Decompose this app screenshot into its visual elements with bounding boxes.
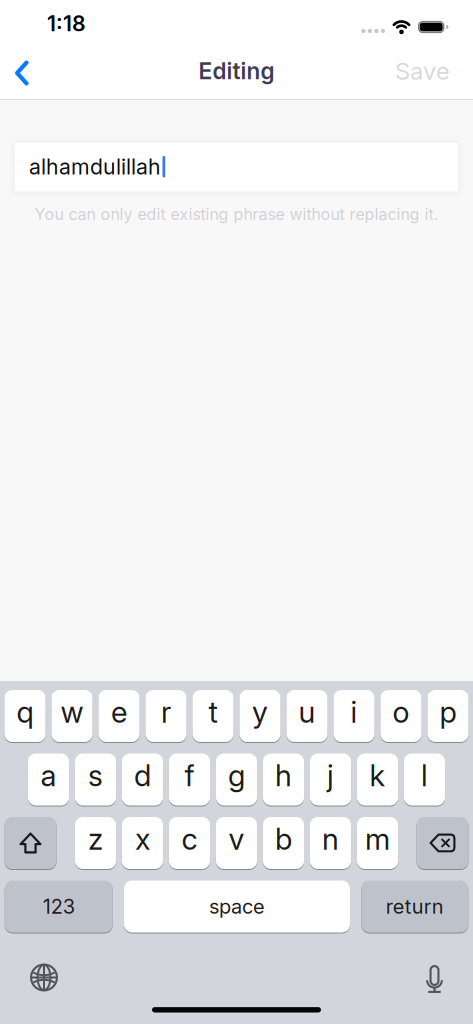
button[interactable]: v bbox=[216, 817, 257, 869]
button[interactable]: Back bbox=[0, 47, 29, 98]
staticText: d bbox=[134, 758, 151, 793]
staticText: n bbox=[322, 821, 339, 857]
staticText: z bbox=[88, 821, 103, 857]
button[interactable]: o bbox=[380, 690, 422, 742]
staticText: o bbox=[392, 694, 409, 730]
button[interactable]: z bbox=[75, 817, 116, 869]
button[interactable]: 123 bbox=[5, 880, 113, 932]
staticText: 123 bbox=[43, 894, 75, 919]
button[interactable]: q bbox=[4, 690, 46, 742]
staticText: q bbox=[16, 694, 33, 730]
button[interactable]: e bbox=[98, 690, 140, 742]
button[interactable]: Dictation bbox=[426, 963, 473, 991]
staticText: Save bbox=[395, 56, 450, 85]
button[interactable]: s bbox=[75, 753, 116, 805]
button[interactable]: n bbox=[310, 817, 351, 869]
button[interactable]: j bbox=[310, 753, 351, 805]
staticText: r bbox=[161, 694, 171, 730]
button[interactable]: w bbox=[51, 690, 93, 742]
button[interactable]: y bbox=[239, 690, 281, 742]
button[interactable]: c bbox=[169, 817, 210, 869]
staticText: w bbox=[60, 694, 83, 730]
staticText: Editing bbox=[198, 57, 274, 85]
staticText: 1:18 bbox=[47, 11, 86, 36]
button[interactable]: return bbox=[361, 880, 468, 932]
staticText: x bbox=[135, 821, 150, 857]
staticText: j bbox=[327, 758, 334, 793]
button[interactable]: p bbox=[427, 690, 469, 742]
staticText: space bbox=[209, 894, 265, 919]
button[interactable]: Phrase text field bbox=[13, 141, 459, 192]
button[interactable]: f bbox=[169, 753, 210, 805]
staticText: v bbox=[228, 821, 244, 857]
button[interactable]: Next keyboard bbox=[0, 963, 58, 991]
button[interactable]: t bbox=[192, 690, 234, 742]
button[interactable]: Save bbox=[395, 58, 473, 87]
button[interactable]: u bbox=[286, 690, 328, 742]
button[interactable]: g bbox=[216, 753, 257, 805]
staticText: e bbox=[111, 694, 127, 730]
button[interactable]: a bbox=[28, 753, 69, 805]
button[interactable]: Delete bbox=[416, 817, 468, 869]
staticText: You can only edit existing phrase withou… bbox=[34, 204, 438, 224]
button[interactable]: x bbox=[122, 817, 163, 869]
staticText: g bbox=[228, 758, 245, 793]
staticText: c bbox=[181, 821, 197, 857]
staticText: y bbox=[252, 694, 268, 730]
staticText: u bbox=[298, 694, 315, 730]
staticText: k bbox=[369, 758, 385, 793]
staticText: i bbox=[350, 694, 357, 730]
staticText: l bbox=[421, 758, 428, 793]
button[interactable]: h bbox=[263, 753, 304, 805]
button[interactable]: l bbox=[404, 753, 445, 805]
staticText: return bbox=[386, 894, 444, 919]
staticText: m bbox=[365, 821, 390, 857]
button[interactable]: i bbox=[333, 690, 375, 742]
button[interactable]: space bbox=[124, 880, 350, 932]
staticText: f bbox=[184, 758, 194, 793]
staticText: h bbox=[275, 758, 292, 793]
button[interactable]: k bbox=[357, 753, 398, 805]
button[interactable]: d bbox=[122, 753, 163, 805]
staticText: p bbox=[439, 694, 456, 730]
staticText: s bbox=[88, 758, 103, 793]
staticText: t bbox=[208, 694, 217, 730]
button[interactable]: r bbox=[145, 690, 187, 742]
button[interactable]: m bbox=[357, 817, 398, 869]
staticText: alhamdulillah bbox=[29, 154, 161, 180]
staticText: b bbox=[275, 821, 292, 857]
staticText: a bbox=[40, 758, 56, 793]
button[interactable]: b bbox=[263, 817, 304, 869]
button[interactable]: Shift bbox=[4, 817, 56, 869]
